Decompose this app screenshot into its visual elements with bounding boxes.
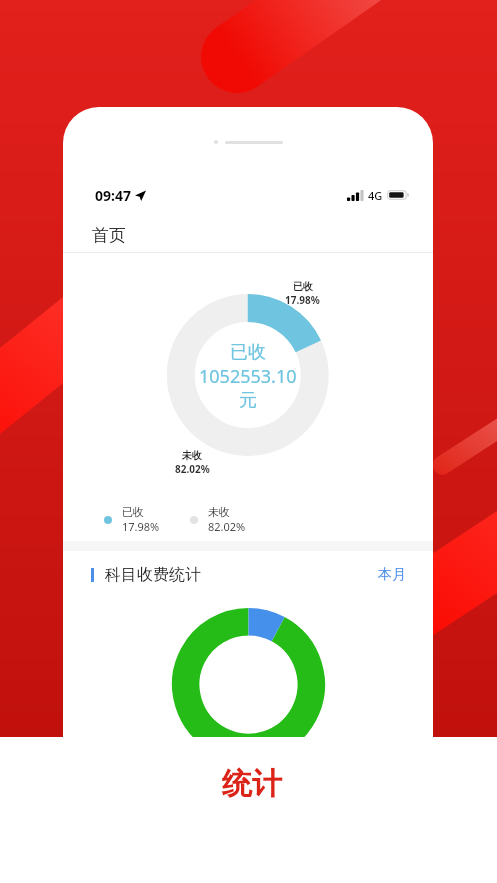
staticText: 首页 (92, 225, 126, 246)
staticText: 元 (239, 389, 257, 412)
staticText: 82.02% (208, 519, 246, 534)
staticText: 17.98% (122, 519, 160, 534)
staticText: 已收 (230, 341, 266, 364)
staticText: 已收 (122, 505, 144, 519)
staticText: 09:47 (95, 186, 131, 204)
staticText: 82.02% (175, 462, 210, 476)
staticText: 本月 (378, 566, 406, 584)
staticText: 未收 (208, 505, 230, 519)
button[interactable]: 科目收费统计 (91, 562, 406, 588)
staticText: 已收 (293, 280, 313, 293)
staticText: 未收 (182, 449, 202, 462)
staticText: 统计 (222, 765, 282, 803)
staticText: 1052553.10 (199, 364, 297, 389)
staticText: 17.98% (285, 293, 320, 307)
staticText: 4G (368, 188, 383, 203)
staticText: 科目收费统计 (105, 565, 201, 585)
